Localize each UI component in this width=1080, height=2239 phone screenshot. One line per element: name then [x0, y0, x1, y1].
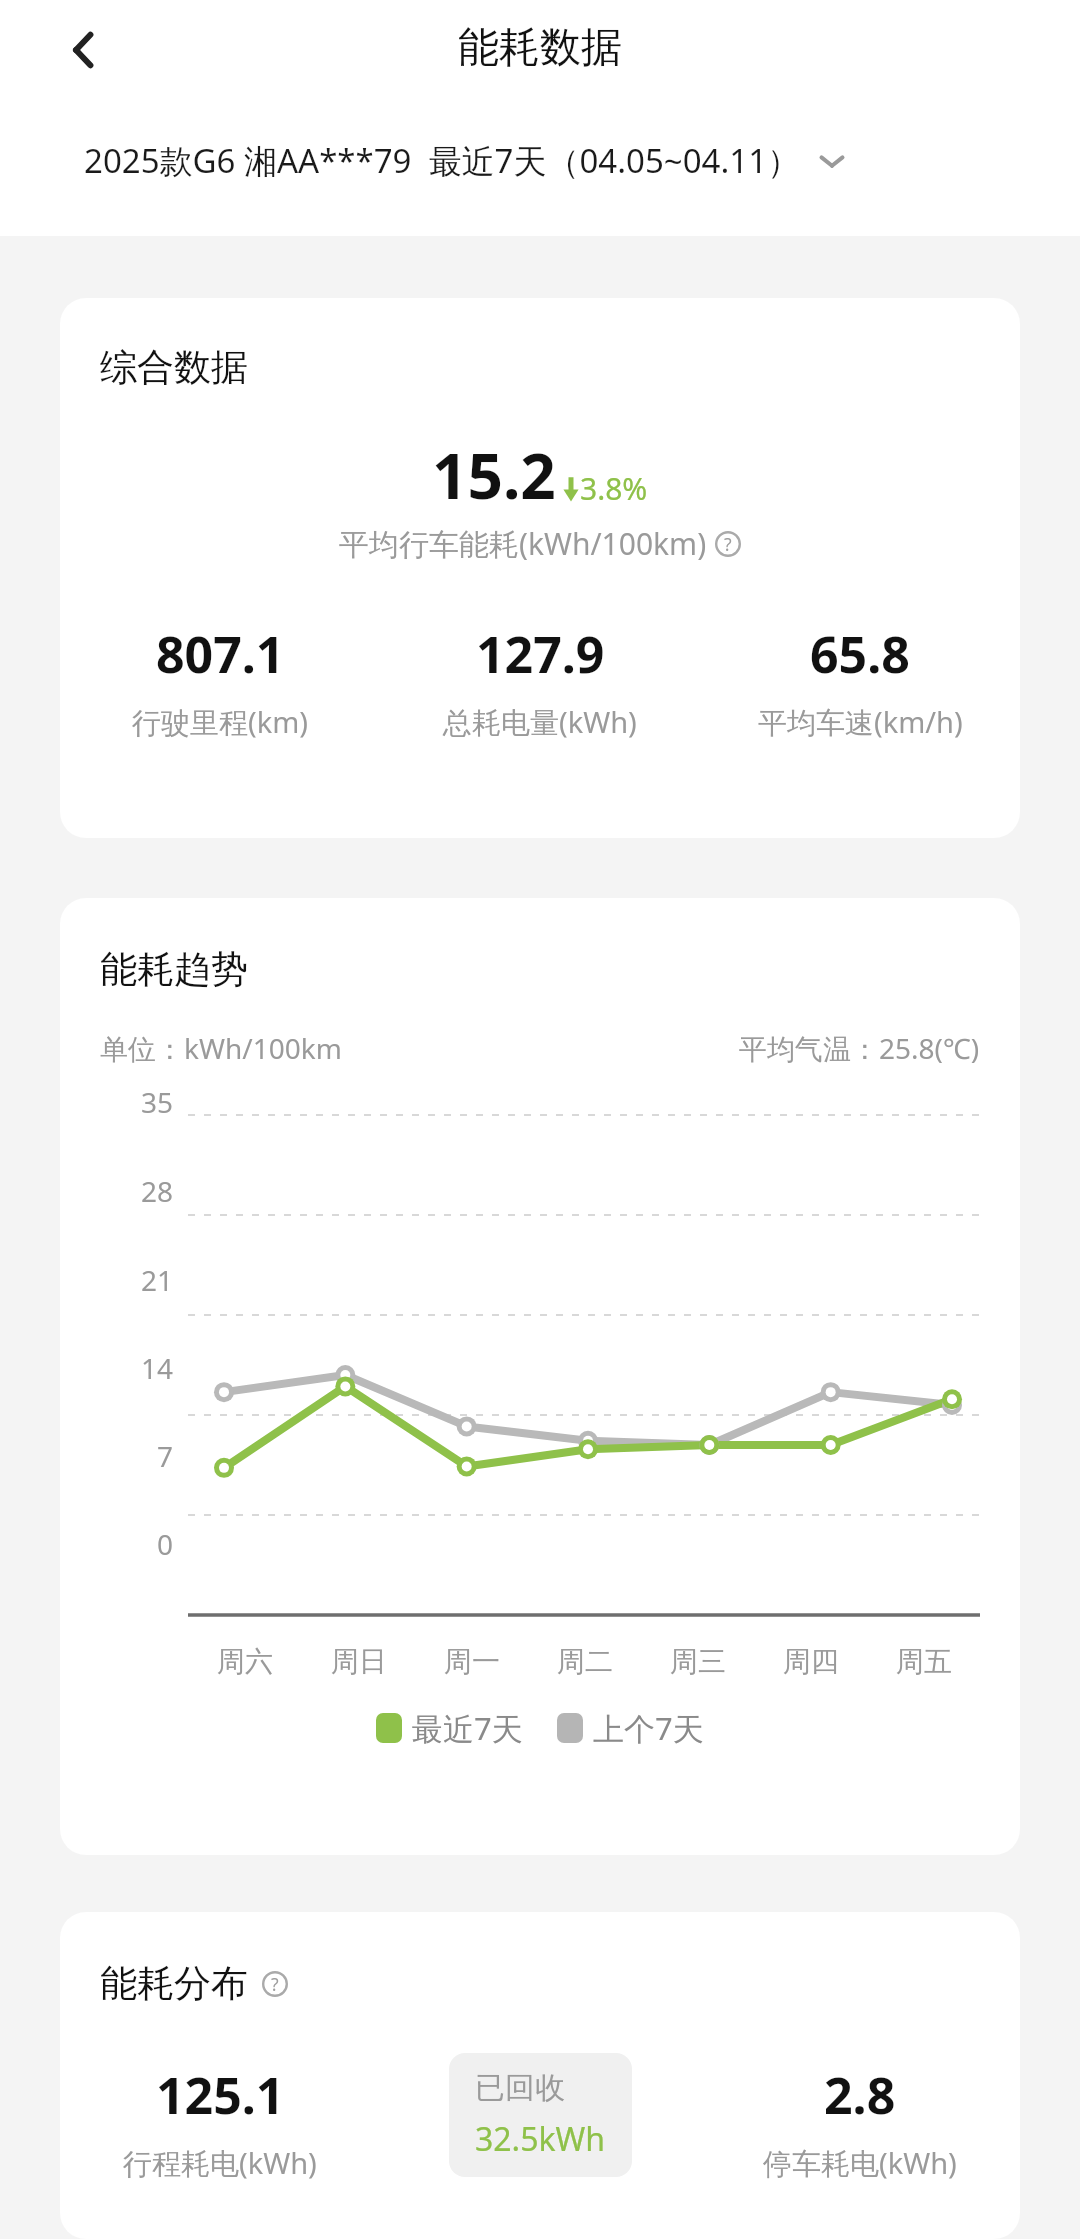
- button[interactable]: 2025款G6 湘AA***79 最近7天（04.05~04.11）: [84, 138, 847, 183]
- staticText: 14: [141, 1349, 174, 1387]
- button[interactable]: 65.8: [700, 620, 1020, 742]
- staticText: 21: [141, 1261, 174, 1299]
- button[interactable]: 125.1: [60, 2061, 380, 2183]
- button[interactable]: 上个7天: [557, 1707, 704, 1749]
- staticText: 周六: [217, 1644, 273, 1679]
- staticText: 32.5kWh: [475, 2117, 606, 2161]
- staticText: 807.1: [156, 620, 285, 688]
- staticText: 能耗数据: [458, 22, 622, 74]
- button[interactable]: Info: [715, 531, 741, 557]
- staticText: 行驶里程(km): [132, 702, 309, 742]
- staticText: 上个7天: [593, 1707, 704, 1749]
- staticText: 周二: [557, 1644, 613, 1679]
- staticText: 0: [157, 1525, 174, 1563]
- staticText: 能耗分布: [100, 1960, 248, 2007]
- staticText: 总耗电量(kWh): [443, 702, 637, 742]
- staticText: 周日: [331, 1644, 387, 1679]
- staticText: 28: [141, 1172, 174, 1210]
- staticText: 周一: [444, 1644, 500, 1679]
- staticText: 停车耗电(kWh): [763, 2143, 957, 2183]
- button[interactable]: 127.9: [380, 620, 700, 742]
- staticText: 7: [157, 1437, 174, 1475]
- button[interactable]: Info: [262, 1971, 288, 1997]
- staticText: 综合数据: [100, 344, 248, 391]
- staticText: 平均气温：25.8(℃): [739, 1029, 980, 1067]
- staticText: ?: [724, 532, 732, 556]
- staticText: 65.8: [810, 620, 910, 688]
- staticText: 平均行车能耗(kWh/100km): [339, 523, 707, 564]
- staticText: 3.8%: [580, 468, 648, 509]
- staticText: 周五: [896, 1644, 952, 1679]
- staticText: 平均车速(km/h): [758, 702, 963, 742]
- staticText: 已回收: [475, 2069, 565, 2107]
- staticText: ?: [271, 1972, 279, 1996]
- staticText: 周三: [670, 1644, 726, 1679]
- button[interactable]: 最近7天: [376, 1707, 523, 1749]
- staticText: 2.8: [824, 2061, 896, 2129]
- button[interactable]: 已回收: [449, 2053, 632, 2177]
- staticText: 15.2: [432, 433, 556, 517]
- staticText: 周四: [783, 1644, 839, 1679]
- staticText: 最近7天: [412, 1707, 523, 1749]
- staticText: 能耗趋势: [100, 946, 248, 993]
- button[interactable]: 2.8: [700, 2061, 1020, 2183]
- staticText: 行程耗电(kWh): [123, 2143, 317, 2183]
- staticText: 单位：kWh/100km: [100, 1029, 342, 1067]
- staticText: 2025款G6 湘AA***79 最近7天（04.05~04.11）: [84, 138, 801, 183]
- staticText: 125.1: [156, 2061, 285, 2129]
- staticText: 35: [141, 1083, 174, 1121]
- button[interactable]: Back: [46, 12, 122, 88]
- staticText: 127.9: [476, 620, 605, 688]
- button[interactable]: 807.1: [60, 620, 380, 742]
